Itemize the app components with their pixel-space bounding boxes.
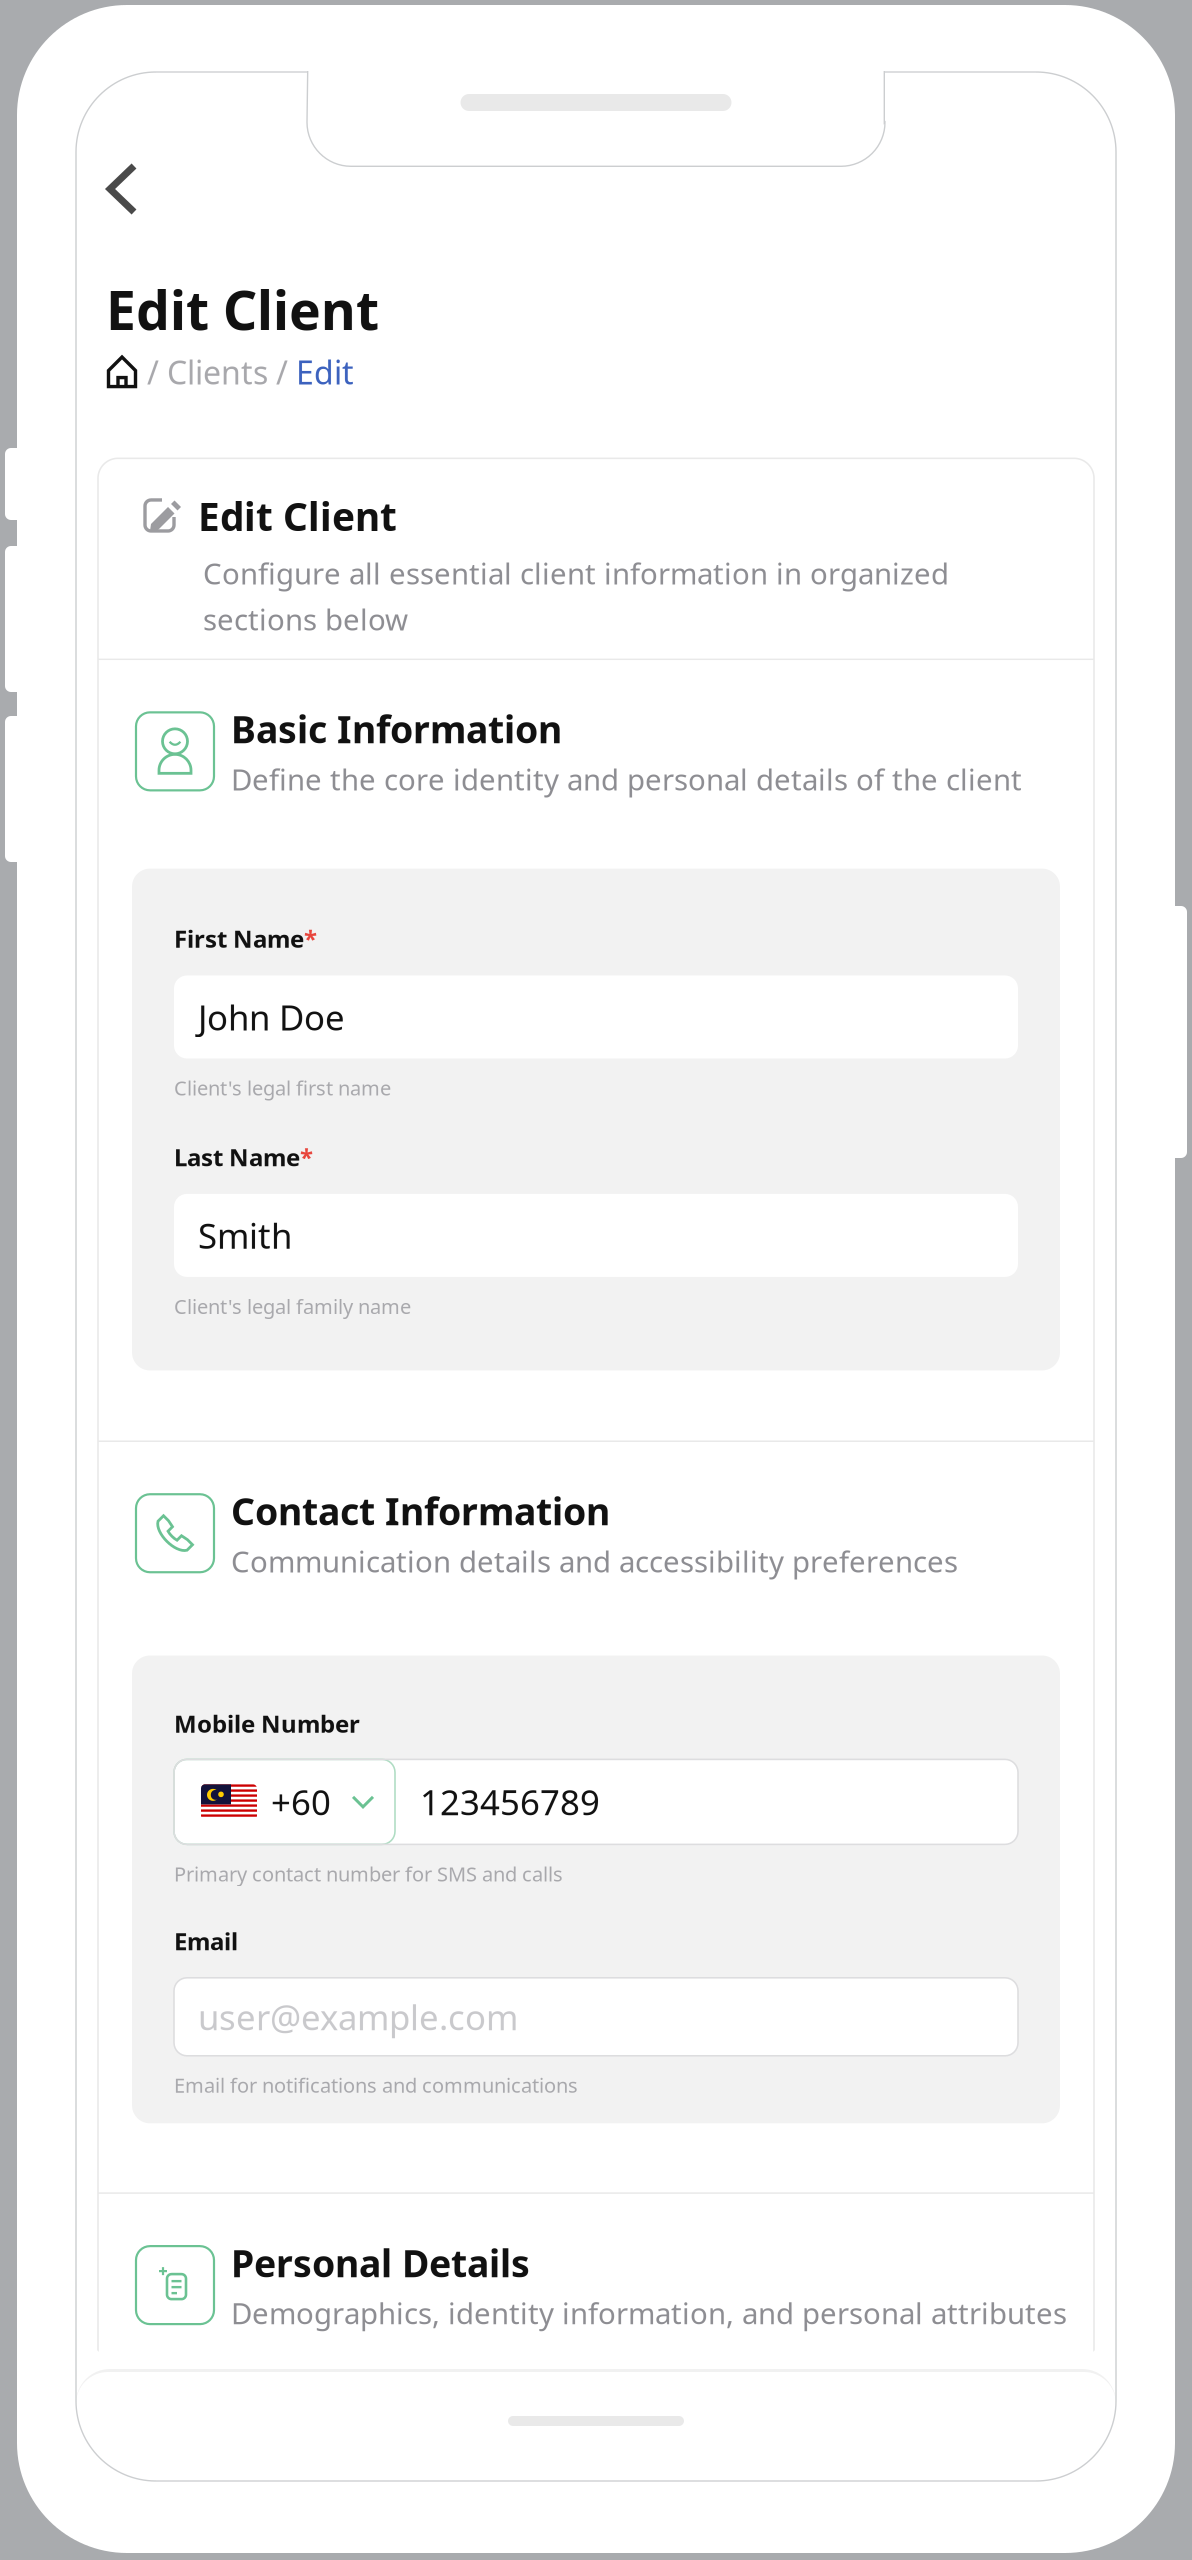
staticText: user@example.com bbox=[198, 1994, 518, 2040]
staticText: Communication details and accessibility … bbox=[231, 1541, 958, 1580]
staticText: First Name bbox=[174, 923, 304, 954]
staticText: * bbox=[300, 1141, 313, 1173]
button[interactable]: +60 bbox=[174, 1759, 395, 1844]
staticText: Configure all essential client informati… bbox=[203, 554, 949, 593]
staticText: Basic Information bbox=[231, 704, 562, 754]
staticText: John Doe bbox=[198, 994, 345, 1040]
button[interactable]: John Doe bbox=[174, 975, 1018, 1058]
staticText: Last Name bbox=[174, 1141, 300, 1173]
button[interactable]: Contact Information bbox=[136, 1486, 1070, 1580]
staticText: Demographics, identity information, and … bbox=[231, 2293, 1067, 2332]
staticText: Email for notifications and communicatio… bbox=[174, 2072, 578, 2098]
staticText: Edit Client bbox=[198, 490, 397, 542]
staticText: Primary contact number for SMS and calls bbox=[174, 1860, 563, 1887]
staticText: Personal Details bbox=[231, 2238, 530, 2287]
staticText: / Clients / bbox=[139, 351, 296, 393]
staticText: Edit bbox=[296, 351, 354, 393]
button[interactable]: Edit bbox=[296, 351, 354, 393]
staticText: 123456789 bbox=[420, 1779, 600, 1825]
staticText: sections below bbox=[203, 600, 408, 639]
staticText: Client's legal family name bbox=[174, 1293, 411, 1319]
staticText: Smith bbox=[198, 1212, 292, 1258]
button[interactable]: Smith bbox=[174, 1194, 1018, 1277]
button[interactable]: 123456789 bbox=[395, 1759, 1018, 1844]
staticText: +60 bbox=[271, 1779, 331, 1825]
button[interactable]: Personal Details bbox=[136, 2238, 1084, 2332]
button[interactable]: user@example.com bbox=[174, 1978, 1018, 2056]
staticText: * bbox=[304, 923, 317, 954]
button[interactable]: Back bbox=[76, 162, 162, 216]
staticText: Edit Client bbox=[106, 274, 379, 345]
staticText: Mobile Number bbox=[174, 1707, 360, 1739]
button[interactable]: Basic Information bbox=[136, 704, 1070, 799]
staticText: Contact Information bbox=[231, 1486, 610, 1536]
staticText: Email bbox=[174, 1925, 238, 1957]
button[interactable]: Home bbox=[106, 354, 139, 391]
staticText: Client's legal first name bbox=[174, 1074, 391, 1101]
staticText: Define the core identity and personal de… bbox=[231, 760, 1022, 799]
